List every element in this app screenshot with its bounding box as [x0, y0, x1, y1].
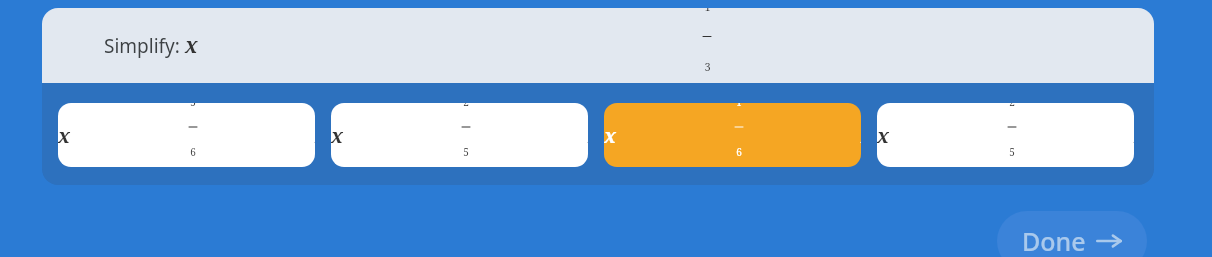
staticText: x	[604, 122, 617, 149]
staticText: 3	[704, 59, 711, 74]
staticText: 1	[704, 8, 711, 14]
button[interactable]: x	[331, 103, 588, 167]
button[interactable]: x	[58, 103, 315, 167]
staticText: x	[58, 122, 71, 149]
button[interactable]: x	[604, 103, 861, 167]
other: Done	[1096, 231, 1122, 251]
staticText: 1	[736, 103, 742, 109]
staticText: x	[877, 122, 890, 149]
staticText: 6	[736, 145, 742, 159]
button[interactable]: Done	[997, 211, 1147, 257]
staticText: 2	[1009, 103, 1015, 109]
staticText: 5	[190, 103, 196, 109]
staticText: 5	[1009, 145, 1015, 159]
staticText: 6	[190, 145, 196, 159]
staticText: Simplify:	[104, 33, 185, 59]
button[interactable]: x	[877, 103, 1134, 167]
staticText: Done	[1022, 224, 1086, 257]
staticText: 5	[463, 145, 469, 159]
staticText: 2	[463, 103, 469, 109]
staticText: x	[185, 31, 198, 60]
staticText: x	[331, 122, 344, 149]
